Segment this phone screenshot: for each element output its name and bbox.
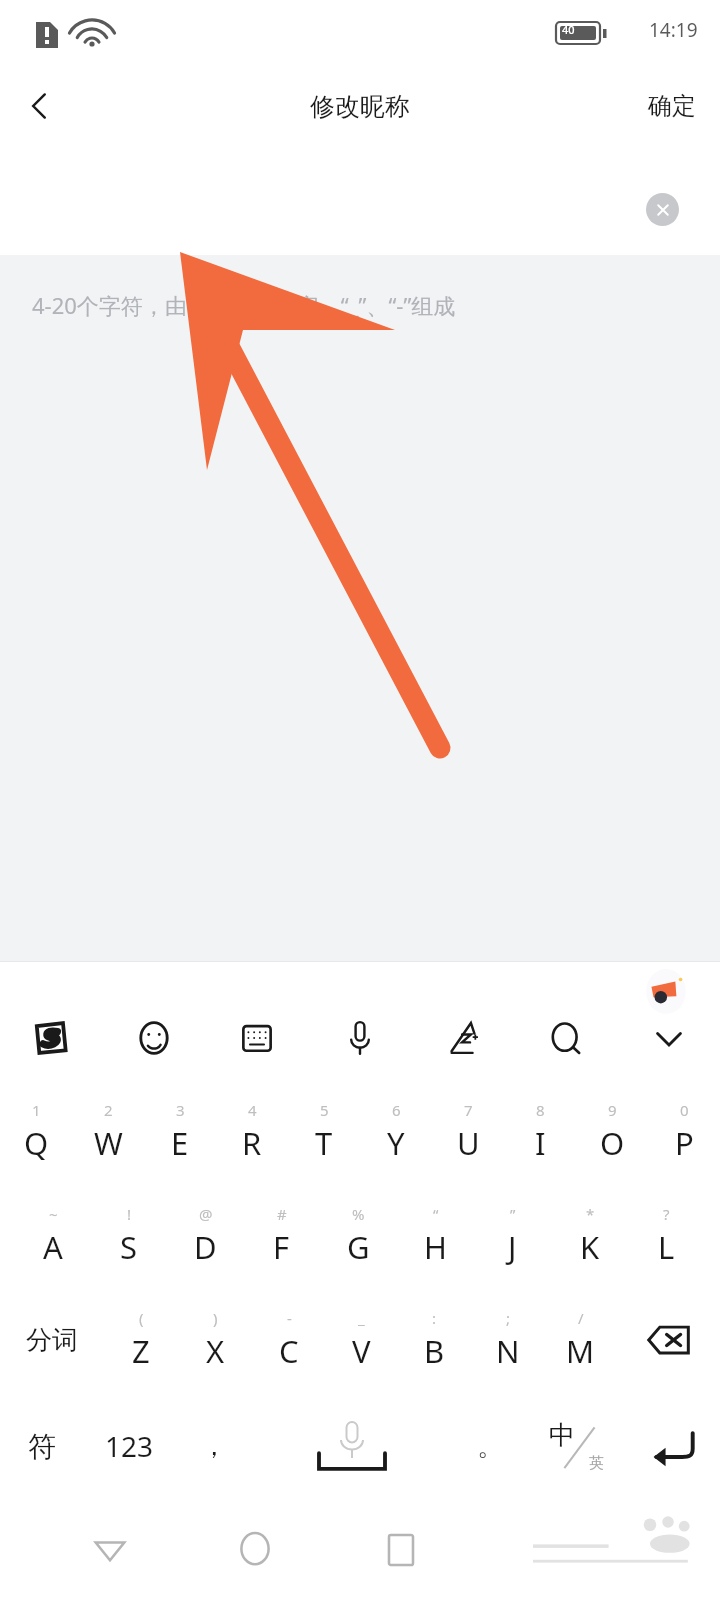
button[interactable]: ( <box>104 1288 178 1392</box>
staticText: K <box>580 1226 600 1268</box>
button[interactable]: Backspace <box>617 1288 720 1392</box>
staticText: 英 <box>589 1454 604 1473</box>
button[interactable]: 5 <box>288 1080 360 1184</box>
staticText: 确定 <box>648 91 696 121</box>
button[interactable]: @ <box>167 1184 243 1288</box>
button[interactable]: 2 <box>72 1080 144 1184</box>
staticText: # <box>277 1204 287 1224</box>
staticText: ) <box>213 1308 218 1328</box>
button[interactable]: 123 <box>83 1392 175 1500</box>
staticText: ， <box>201 1430 227 1463</box>
button[interactable]: Enter <box>624 1392 720 1500</box>
button[interactable]: Emoji <box>102 1006 205 1070</box>
staticText: E <box>171 1122 189 1164</box>
button[interactable]: 0 <box>648 1080 720 1184</box>
staticText: X <box>206 1330 225 1372</box>
button[interactable]: “ <box>397 1184 474 1288</box>
button[interactable]: : <box>398 1288 471 1392</box>
button[interactable]: 3 <box>144 1080 216 1184</box>
staticText: ? <box>663 1204 670 1224</box>
staticText: 40 <box>562 22 575 37</box>
staticText: 7 <box>464 1100 473 1120</box>
button[interactable]: ~ <box>15 1184 91 1288</box>
staticText: C <box>279 1330 299 1372</box>
button[interactable]: ， <box>175 1392 252 1500</box>
staticText: D <box>194 1226 217 1268</box>
button[interactable]: _ <box>325 1288 398 1392</box>
staticText: 6 <box>392 1100 401 1120</box>
staticText: ; <box>506 1308 511 1328</box>
staticText: Q <box>24 1122 49 1164</box>
staticText: Z <box>132 1330 150 1372</box>
staticText: 8 <box>536 1100 545 1120</box>
staticText: ! <box>127 1204 132 1224</box>
button[interactable]: 7 <box>432 1080 504 1184</box>
button[interactable]: 。 <box>451 1392 528 1500</box>
button[interactable]: 确定 <box>624 62 720 150</box>
button[interactable]: ! <box>91 1184 167 1288</box>
button[interactable]: 9 <box>576 1080 648 1184</box>
staticText: B <box>424 1330 445 1372</box>
button[interactable]: ” <box>474 1184 551 1288</box>
button[interactable]: 分词 <box>0 1288 104 1392</box>
button[interactable]: Back <box>0 62 80 150</box>
staticText: % <box>352 1204 365 1224</box>
button[interactable]: ; <box>471 1288 544 1392</box>
button[interactable]: Keyboard layout <box>205 1006 308 1070</box>
staticText: N <box>496 1330 520 1372</box>
staticText: 14:19 <box>649 17 698 43</box>
staticText: _ <box>358 1308 365 1328</box>
staticText: 123 <box>105 1427 154 1465</box>
staticText: I <box>535 1122 546 1164</box>
staticText: 4-20个字符，由中英文、数字、“_”、“-”组成 <box>32 290 456 320</box>
staticText: V <box>352 1330 371 1372</box>
button[interactable]: Clear <box>646 193 679 226</box>
staticText: P <box>675 1122 694 1164</box>
button[interactable]: Switch Chinese English <box>528 1392 624 1500</box>
button[interactable]: # <box>243 1184 320 1288</box>
button[interactable]: 6 <box>360 1080 432 1184</box>
button[interactable]: Space <box>252 1392 451 1500</box>
staticText: G <box>347 1226 370 1268</box>
button[interactable]: Home <box>219 1514 291 1586</box>
staticText: 。 <box>477 1430 503 1463</box>
staticText: H <box>424 1226 447 1268</box>
staticText: 符 <box>28 1429 56 1464</box>
button[interactable]: ? <box>628 1184 705 1288</box>
staticText: Y <box>387 1122 405 1164</box>
staticText: 2 <box>104 1100 113 1120</box>
button[interactable]: 8 <box>504 1080 576 1184</box>
button[interactable]: Search <box>514 1006 617 1070</box>
button[interactable]: / <box>544 1288 617 1392</box>
staticText: 0 <box>680 1100 689 1120</box>
button[interactable]: Recents <box>365 1514 437 1586</box>
staticText: 中 <box>549 1419 575 1452</box>
staticText: 1 <box>32 1100 41 1120</box>
staticText: O <box>600 1122 625 1164</box>
staticText: U <box>457 1122 480 1164</box>
staticText: S <box>120 1226 138 1268</box>
button[interactable]: Handwriting <box>411 1006 514 1070</box>
button[interactable]: Hide keyboard <box>617 1006 720 1070</box>
button[interactable]: * <box>551 1184 628 1288</box>
staticText: / <box>578 1308 584 1328</box>
staticText: 分词 <box>26 1324 78 1357</box>
button[interactable]: 1 <box>0 1080 72 1184</box>
staticText: M <box>566 1330 595 1372</box>
button[interactable]: 4 <box>216 1080 288 1184</box>
staticText: T <box>315 1122 333 1164</box>
button[interactable]: Sogou <box>0 1006 102 1070</box>
button[interactable]: ) <box>178 1288 252 1392</box>
button[interactable]: Sogou assistant <box>640 966 692 1018</box>
button[interactable]: Back <box>74 1514 146 1586</box>
staticText: J <box>508 1226 517 1268</box>
staticText: F <box>273 1226 290 1268</box>
staticText: ( <box>139 1308 144 1328</box>
staticText: “ <box>433 1204 439 1224</box>
staticText: : <box>432 1308 437 1328</box>
button[interactable]: % <box>320 1184 397 1288</box>
button[interactable]: 符 <box>0 1392 83 1500</box>
button[interactable]: - <box>252 1288 325 1392</box>
button[interactable]: Voice input <box>308 1006 411 1070</box>
staticText: 3 <box>176 1100 185 1120</box>
